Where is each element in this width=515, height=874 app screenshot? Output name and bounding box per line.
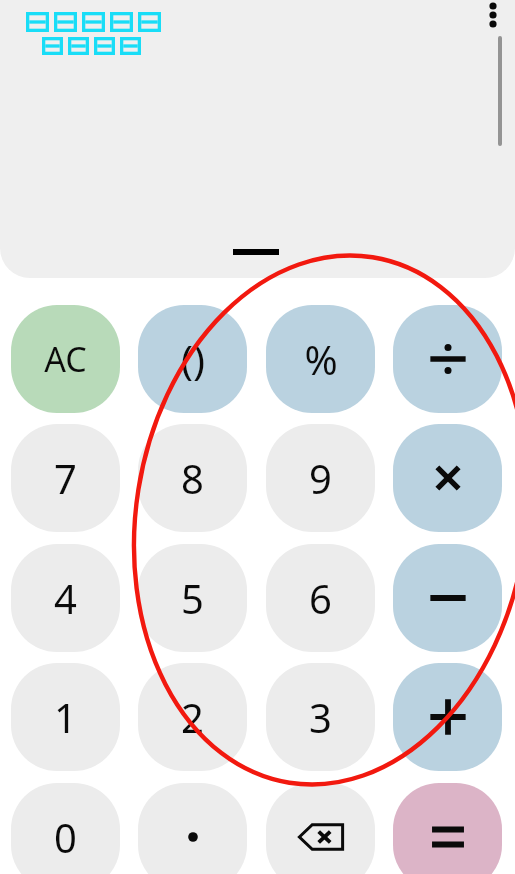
button[interactable] [393,424,502,532]
button[interactable]: 4 [11,544,120,652]
button[interactable]: 0 [11,783,120,874]
staticText: AC [44,336,87,382]
button[interactable] [393,663,502,771]
staticText: 1 [54,690,77,744]
staticText: 3 [309,690,332,744]
button[interactable]: 3 [266,663,375,771]
staticText: 6 [309,571,332,625]
button[interactable]: 8 [138,424,247,532]
button[interactable]: AC [11,305,120,413]
button[interactable] [138,783,247,874]
button[interactable] [393,544,502,652]
staticText: 5 [181,571,204,625]
button[interactable]: 9 [266,424,375,532]
button[interactable]: 2 [138,663,247,771]
staticText: () [181,332,205,386]
button[interactable]: 6 [266,544,375,652]
staticText: 8 [181,451,204,505]
button[interactable]: 1 [11,663,120,771]
button[interactable]: Show history [221,236,293,270]
staticText: 7 [54,451,77,505]
button[interactable]: % [266,305,375,413]
staticText: 2 [181,690,204,744]
staticText: 0 [54,810,77,864]
staticText: 4 [54,571,77,625]
button[interactable] [393,783,502,874]
button[interactable]: () [138,305,247,413]
staticText: % [304,332,338,386]
button[interactable]: 7 [11,424,120,532]
button[interactable] [393,305,502,413]
staticText: 9 [309,451,332,505]
button[interactable]: Delete [266,783,375,874]
button[interactable]: 5 [138,544,247,652]
button[interactable]: More options [475,0,515,36]
